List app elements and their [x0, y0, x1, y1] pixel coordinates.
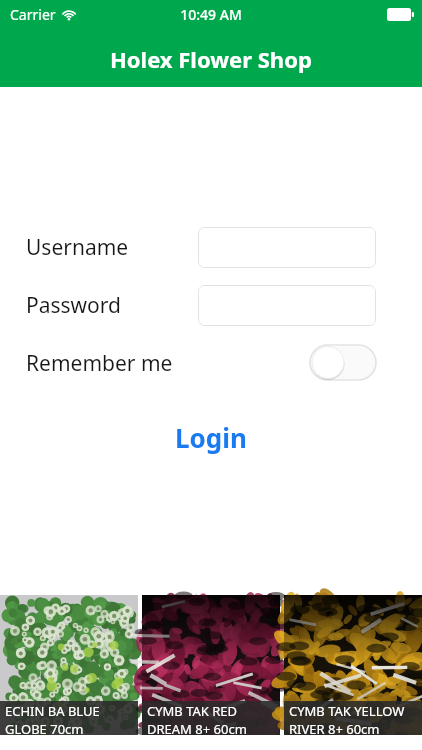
- button[interactable]: CYMB TAK YELLOW: [284, 595, 422, 735]
- button[interactable]: Username input field: [198, 227, 376, 268]
- button[interactable]: ECHIN BA BLUE: [0, 595, 138, 735]
- button[interactable]: Remember me toggle: [310, 345, 376, 380]
- staticText: CYMB TAK RED: [147, 702, 238, 720]
- staticText: Carrier: [10, 5, 56, 24]
- button[interactable]: CYMB TAK RED: [142, 595, 280, 735]
- staticText: Password: [26, 291, 121, 320]
- button[interactable]: Password input field: [198, 285, 376, 326]
- staticText: RIVER 8+ 60cm: [289, 720, 380, 735]
- staticText: ECHIN BA BLUE: [5, 702, 100, 720]
- staticText: Username: [26, 233, 129, 262]
- staticText: Remember me: [26, 349, 173, 378]
- staticText: DREAM 8+ 60cm: [147, 720, 247, 735]
- staticText: GLOBE 70cm: [5, 720, 84, 735]
- staticText: Login: [175, 420, 247, 455]
- button[interactable]: Login: [0, 415, 422, 459]
- staticText: 10:49 AM: [180, 5, 242, 24]
- staticText: Holex Flower Shop: [110, 44, 312, 74]
- staticText: CYMB TAK YELLOW: [289, 702, 405, 720]
